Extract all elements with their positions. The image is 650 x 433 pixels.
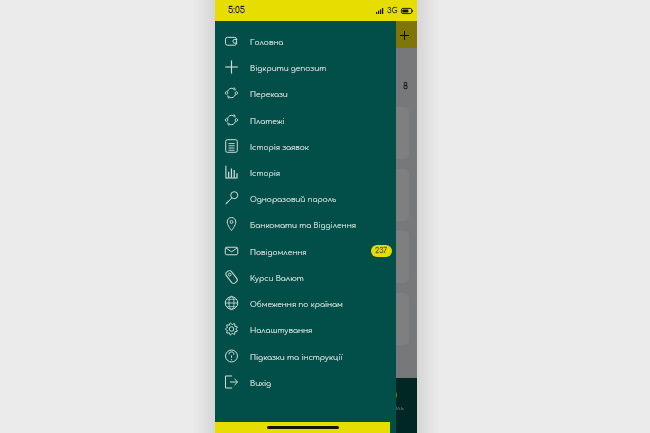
button[interactable]: ••••: [223, 169, 409, 221]
button[interactable]: Історія заявок: [215, 133, 396, 159]
staticText: Відкрити депозит: [250, 64, 327, 72]
button[interactable]: Підказки та інструкції: [215, 343, 396, 369]
staticText: Обмеження по країнам: [250, 300, 343, 308]
staticText: Вихід: [250, 379, 272, 387]
staticText: Підказки та інструкції: [250, 353, 343, 361]
staticText: 237: [375, 247, 388, 255]
staticText: 8: [403, 82, 409, 91]
staticText: Банкомати та Відділення: [250, 221, 357, 229]
button[interactable]: Відкрити депозит: [215, 54, 396, 80]
staticText: Одноразовий пароль: [250, 195, 337, 203]
button[interactable]: Обмеження по країнам: [215, 290, 396, 316]
button[interactable]: Платежі: [265, 378, 315, 422]
staticText: Головна: [250, 38, 284, 46]
button[interactable]: Одноразовий пароль: [215, 185, 396, 211]
staticText: 5:05: [228, 6, 246, 15]
button[interactable]: Банкомати та Відділення: [215, 211, 396, 237]
button[interactable]: ••••: [223, 231, 409, 283]
staticText: Історія: [250, 169, 281, 177]
staticText: 3G: [387, 6, 398, 15]
button[interactable]: Вихід: [215, 369, 396, 395]
staticText: Налаштування: [250, 326, 313, 334]
staticText: ••••: [231, 143, 242, 151]
staticText: Мої картки: [223, 82, 277, 91]
staticText: Курси Валют: [250, 274, 304, 282]
staticText: Перекази: [250, 90, 288, 98]
staticText: ••••: [231, 267, 242, 275]
button[interactable]: Платежі: [215, 107, 396, 133]
button[interactable]: Профіль: [366, 378, 417, 422]
button[interactable]: Головна: [215, 28, 396, 54]
staticText: Профіль: [379, 405, 404, 411]
staticText: Повідомлення: [250, 248, 307, 256]
button[interactable]: Головна: [215, 378, 265, 422]
button[interactable]: Перекази: [215, 80, 396, 106]
staticText: ••••: [231, 329, 242, 337]
button[interactable]: Налаштування: [215, 316, 396, 342]
button[interactable]: ••••: [223, 107, 409, 159]
button[interactable]: Add: [395, 26, 413, 44]
button[interactable]: Курси Валют: [215, 264, 396, 290]
staticText: Історія заявок: [250, 143, 309, 151]
button[interactable]: ••••: [223, 293, 409, 345]
staticText: Платежі: [250, 117, 285, 125]
button[interactable]: Історія: [215, 159, 396, 185]
button[interactable]: Повідомлення: [215, 238, 396, 264]
